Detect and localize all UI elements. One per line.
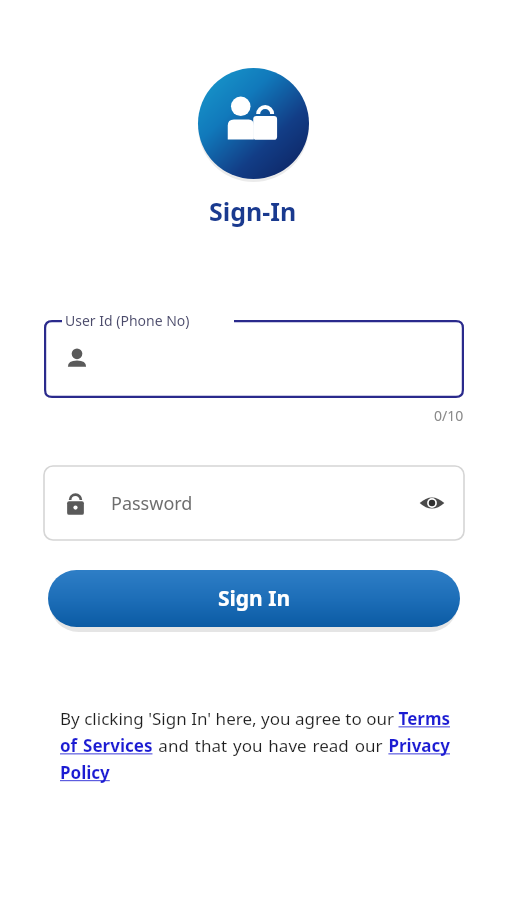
button[interactable]: Show password (410, 481, 454, 525)
button[interactable] (44, 320, 464, 398)
staticText: By clicking 'Sign In' here, you agree to… (60, 707, 450, 784)
staticText: Sign In (218, 584, 291, 613)
staticText: User Id (Phone No) (65, 311, 190, 330)
button[interactable]: Sign In (48, 570, 460, 627)
button[interactable]: Password (44, 466, 464, 540)
staticText: 0/10 (434, 406, 464, 425)
staticText: Sign-In (209, 194, 297, 228)
staticText: Password (111, 491, 193, 516)
